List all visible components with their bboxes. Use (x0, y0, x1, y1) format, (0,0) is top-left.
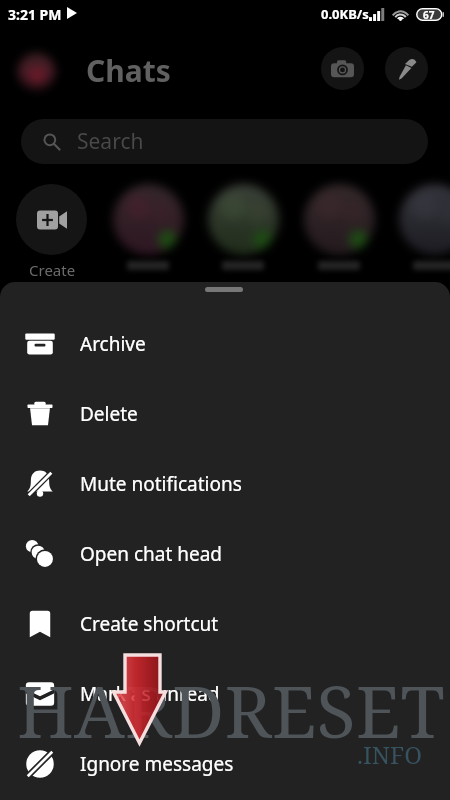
button[interactable]: Story (299, 179, 379, 259)
button[interactable]: Mark as unread (0, 659, 450, 729)
button[interactable]: Archive (0, 309, 450, 379)
staticText: Chats (86, 50, 171, 91)
button[interactable]: Mute notifications (0, 449, 450, 519)
button[interactable]: New message (385, 47, 428, 90)
button[interactable]: Ignore messages (0, 729, 450, 799)
staticText: Search (77, 127, 144, 156)
button[interactable]: Create story (16, 184, 87, 255)
staticText: Ignore messages (80, 751, 234, 777)
staticText: 67 (423, 8, 435, 21)
button[interactable]: Open chat head (0, 519, 450, 589)
button[interactable]: Story (108, 179, 188, 259)
button[interactable]: Camera (321, 47, 364, 90)
staticText: Mark as unread (80, 681, 220, 707)
button[interactable]: Story (203, 179, 283, 259)
staticText: Create shortcut (80, 611, 219, 637)
staticText: Create (29, 260, 76, 280)
staticText: Open chat head (80, 541, 223, 567)
staticText: Delete (80, 401, 138, 427)
staticText: .INFO (357, 738, 423, 771)
button[interactable]: Delete (0, 379, 450, 449)
button[interactable]: Story (394, 179, 450, 259)
staticText: 0.0KB/s (321, 5, 369, 23)
button[interactable]: Create shortcut (0, 589, 450, 659)
button[interactable]: Search (21, 119, 428, 164)
staticText: 3:21 PM (8, 5, 62, 24)
staticText: Archive (80, 331, 146, 357)
staticText: Mute notifications (80, 471, 242, 497)
button[interactable]: Profile (10, 45, 62, 97)
staticText: HARDRESET (17, 661, 445, 759)
